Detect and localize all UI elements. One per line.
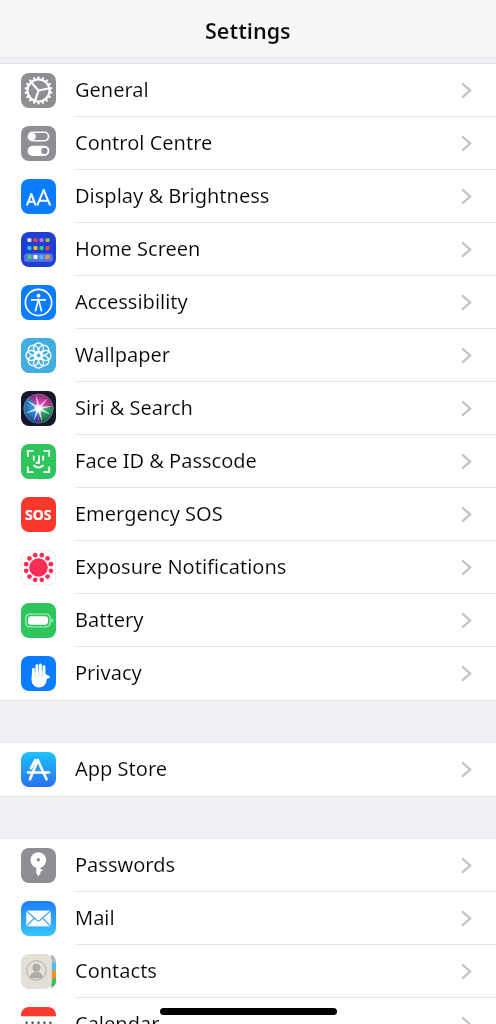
- staticText: General: [75, 76, 149, 103]
- button[interactable]: Display & Brightness: [0, 170, 496, 223]
- button[interactable]: Wallpaper: [0, 329, 496, 382]
- button[interactable]: SOS: [0, 488, 496, 541]
- staticText: Settings: [205, 16, 291, 45]
- staticText: Battery: [75, 606, 144, 633]
- button[interactable]: Contacts: [0, 945, 496, 998]
- staticText: App Store: [75, 755, 168, 782]
- button[interactable]: Calendar: [0, 998, 496, 1024]
- staticText: Display & Brightness: [75, 182, 270, 209]
- staticText: Privacy: [75, 659, 142, 686]
- staticText: Wallpaper: [75, 341, 171, 368]
- staticText: Contacts: [75, 957, 157, 984]
- button[interactable]: Home Screen: [0, 223, 496, 276]
- button[interactable]: Mail: [0, 892, 496, 945]
- staticText: Face ID & Passcode: [75, 447, 257, 474]
- staticText: Control Centre: [75, 129, 213, 156]
- button[interactable]: General: [0, 64, 496, 117]
- staticText: Calendar: [75, 1010, 160, 1024]
- staticText: Accessibility: [75, 288, 188, 315]
- staticText: SOS: [25, 505, 52, 524]
- button[interactable]: App Store: [0, 743, 496, 796]
- button[interactable]: Control Centre: [0, 117, 496, 170]
- staticText: Home Screen: [75, 235, 201, 262]
- button[interactable]: Battery: [0, 594, 496, 647]
- button[interactable]: Passwords: [0, 839, 496, 892]
- staticText: Siri & Search: [75, 394, 193, 421]
- button[interactable]: Face ID & Passcode: [0, 435, 496, 488]
- staticText: Emergency SOS: [75, 500, 223, 527]
- button[interactable]: Privacy: [0, 647, 496, 700]
- button[interactable]: Siri & Search: [0, 382, 496, 435]
- staticText: Passwords: [75, 851, 176, 878]
- staticText: Mail: [75, 904, 115, 931]
- button[interactable]: Accessibility: [0, 276, 496, 329]
- staticText: Exposure Notifications: [75, 553, 287, 580]
- button[interactable]: Exposure Notifications: [0, 541, 496, 594]
